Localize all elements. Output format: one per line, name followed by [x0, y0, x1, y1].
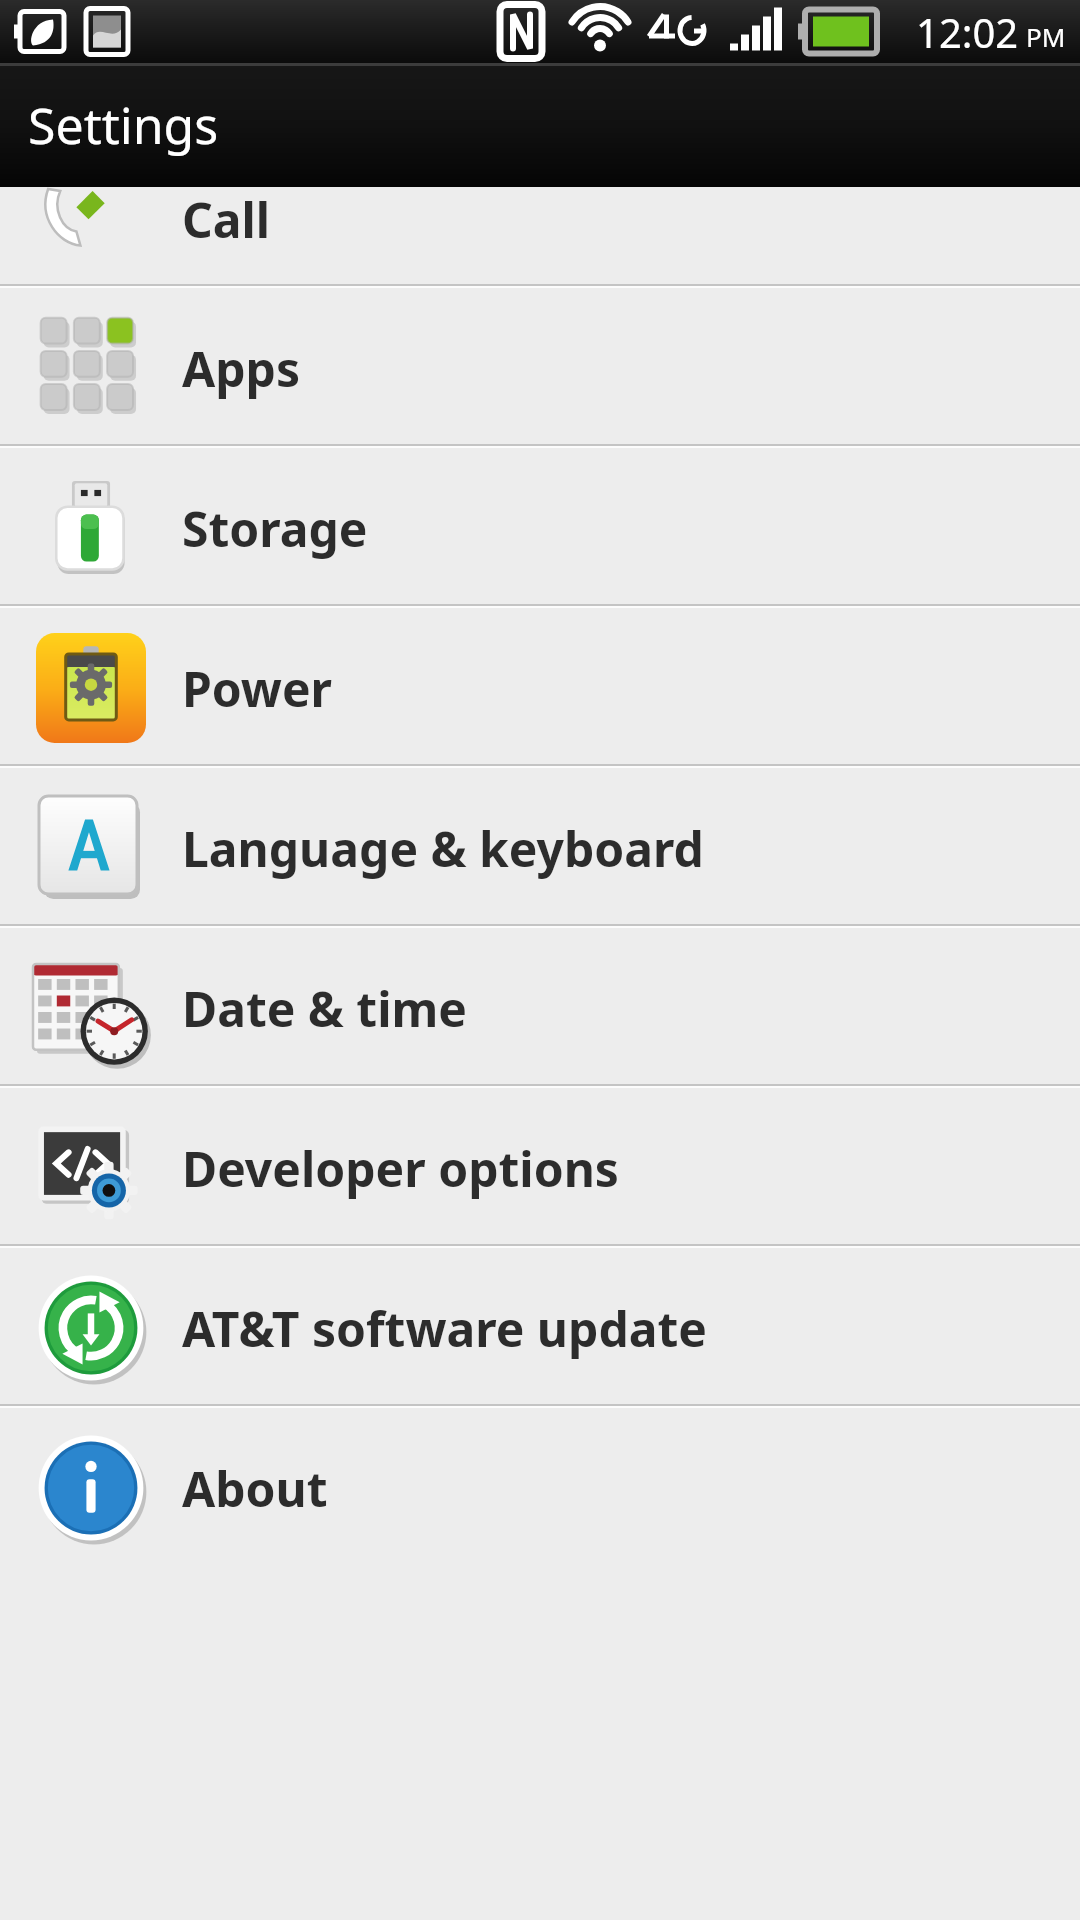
button[interactable]: Apps	[0, 288, 1080, 448]
button[interactable]: Developer options	[0, 1088, 1080, 1248]
button[interactable]: Language and keyboard	[0, 768, 1080, 928]
staticText: Call	[182, 187, 271, 250]
button[interactable]: Power	[0, 608, 1080, 768]
button[interactable]: Call	[0, 187, 1080, 288]
staticText: Language & keyboard	[182, 816, 704, 881]
staticText: 12:02	[916, 5, 1019, 59]
staticText: AT&T software update	[182, 1296, 707, 1361]
button[interactable]: Date and time	[0, 928, 1080, 1088]
button[interactable]: Storage	[0, 448, 1080, 608]
staticText: PM	[1026, 19, 1066, 54]
staticText: Apps	[182, 336, 300, 401]
staticText: Storage	[182, 496, 368, 561]
staticText: About	[182, 1456, 328, 1521]
button[interactable]: About	[0, 1408, 1080, 1568]
staticText: Power	[182, 656, 333, 721]
staticText: Developer options	[182, 1136, 619, 1201]
staticText: Date & time	[182, 976, 467, 1041]
staticText: Settings	[28, 91, 219, 159]
button[interactable]: Software update	[0, 1248, 1080, 1408]
